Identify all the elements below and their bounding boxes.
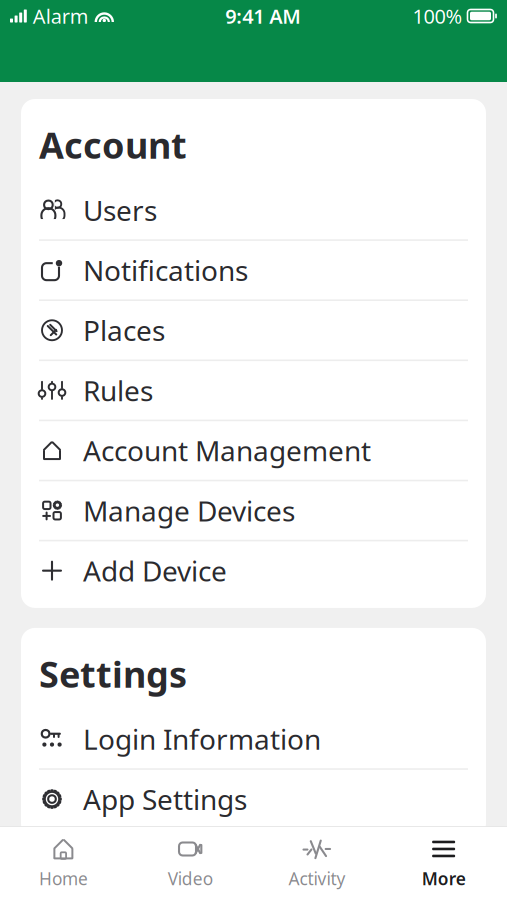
staticText: Alarm [33,3,89,29]
staticText: Activity [288,867,345,890]
staticText: 9:41 AM [225,3,301,29]
staticText: 100% [412,3,462,29]
button[interactable]: Activity [253,827,380,900]
button[interactable]: Manage Devices [21,481,486,541]
staticText: Home [39,867,88,890]
staticText: About [39,880,149,900]
staticText: Rules [83,372,153,409]
button[interactable]: Rules [21,361,486,421]
button[interactable]: Add Device [21,541,486,600]
staticText: Users [83,191,157,229]
staticText: Manage Devices [83,492,295,529]
staticText: Account Management [83,432,371,469]
staticText: App Settings [83,780,247,818]
button[interactable]: Notifications [21,241,486,301]
staticText: More [422,867,466,890]
staticText: Places [83,312,165,349]
staticText: Video [168,867,213,890]
staticText: Login Information [83,720,321,758]
button[interactable]: Video [127,827,254,900]
button[interactable]: Account Management [21,421,486,481]
button[interactable]: Users [21,181,486,241]
staticText: Add Device [83,552,227,589]
staticText: Account [39,121,187,169]
button[interactable]: App Settings [21,770,486,830]
button[interactable]: Login Information [21,710,486,770]
staticText: Notifications [83,252,248,289]
button[interactable]: Home [0,827,127,900]
button[interactable]: More [380,827,507,900]
button[interactable]: Places [21,301,486,361]
staticText: Settings [39,650,187,698]
